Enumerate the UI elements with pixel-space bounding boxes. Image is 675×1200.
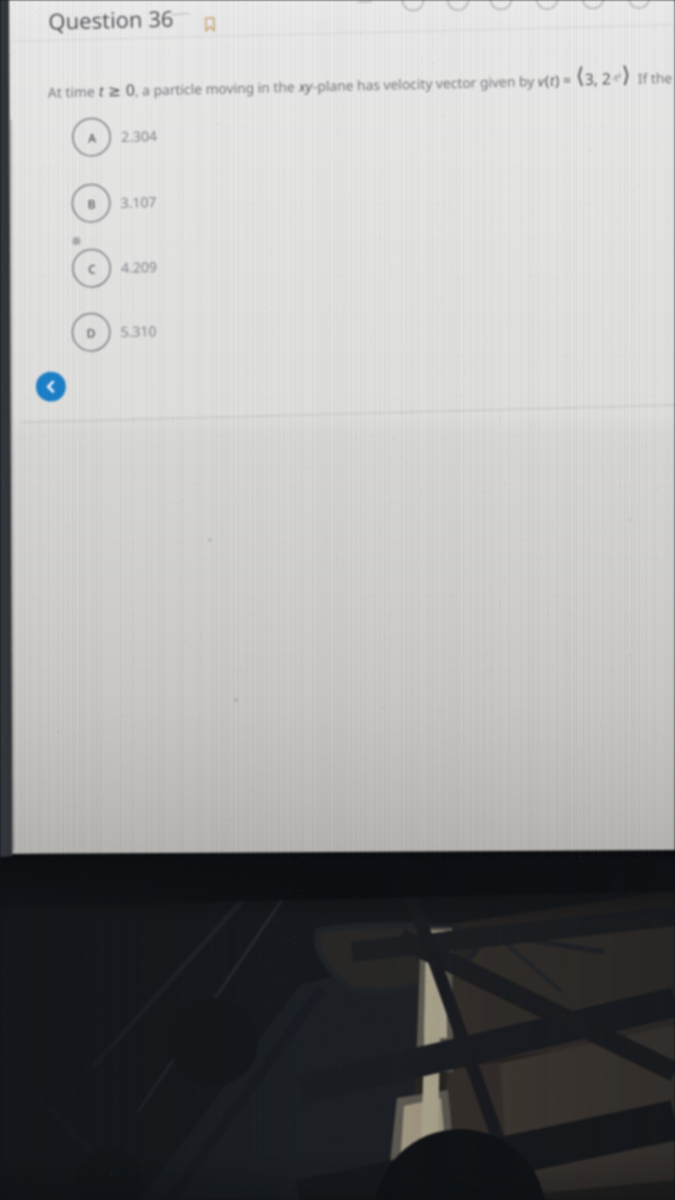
staticText: ( xyxy=(545,70,550,90)
button[interactable]: C xyxy=(71,246,157,289)
staticText: B xyxy=(87,196,96,212)
staticText: ) = xyxy=(555,69,576,90)
staticText: xy xyxy=(299,76,313,96)
staticText: 3, 2 xyxy=(584,67,612,89)
staticText: t xyxy=(550,71,555,90)
button[interactable]: Previous question xyxy=(35,371,66,402)
staticText: , a particle moving in the xyxy=(135,77,299,100)
staticText: C xyxy=(88,261,96,277)
button[interactable]: B xyxy=(70,181,157,224)
staticText: ≥ xyxy=(104,79,126,100)
button[interactable]: Question 36 xyxy=(48,3,175,36)
staticText: -plane has velocity vector given by xyxy=(313,71,538,95)
button[interactable]: D xyxy=(70,310,157,353)
staticText: ⟩ xyxy=(621,62,631,88)
staticText: 3.107 xyxy=(120,192,157,212)
staticText: At time xyxy=(48,81,99,102)
staticText: 2.304 xyxy=(121,126,157,146)
button[interactable]: A xyxy=(71,115,157,158)
button[interactable]: Bookmark xyxy=(201,16,219,33)
staticText: A xyxy=(88,130,96,146)
staticText: If the xyxy=(631,68,673,88)
staticText: Question 36 xyxy=(48,3,175,36)
staticText: 0 xyxy=(126,79,135,100)
staticText: -t² xyxy=(612,71,622,83)
staticText: ⟨ xyxy=(575,63,585,89)
staticText: 4.209 xyxy=(121,257,157,277)
staticText: D xyxy=(86,325,96,341)
staticText: t xyxy=(99,80,104,100)
staticText: v xyxy=(538,71,545,90)
staticText: 5.310 xyxy=(120,321,157,341)
